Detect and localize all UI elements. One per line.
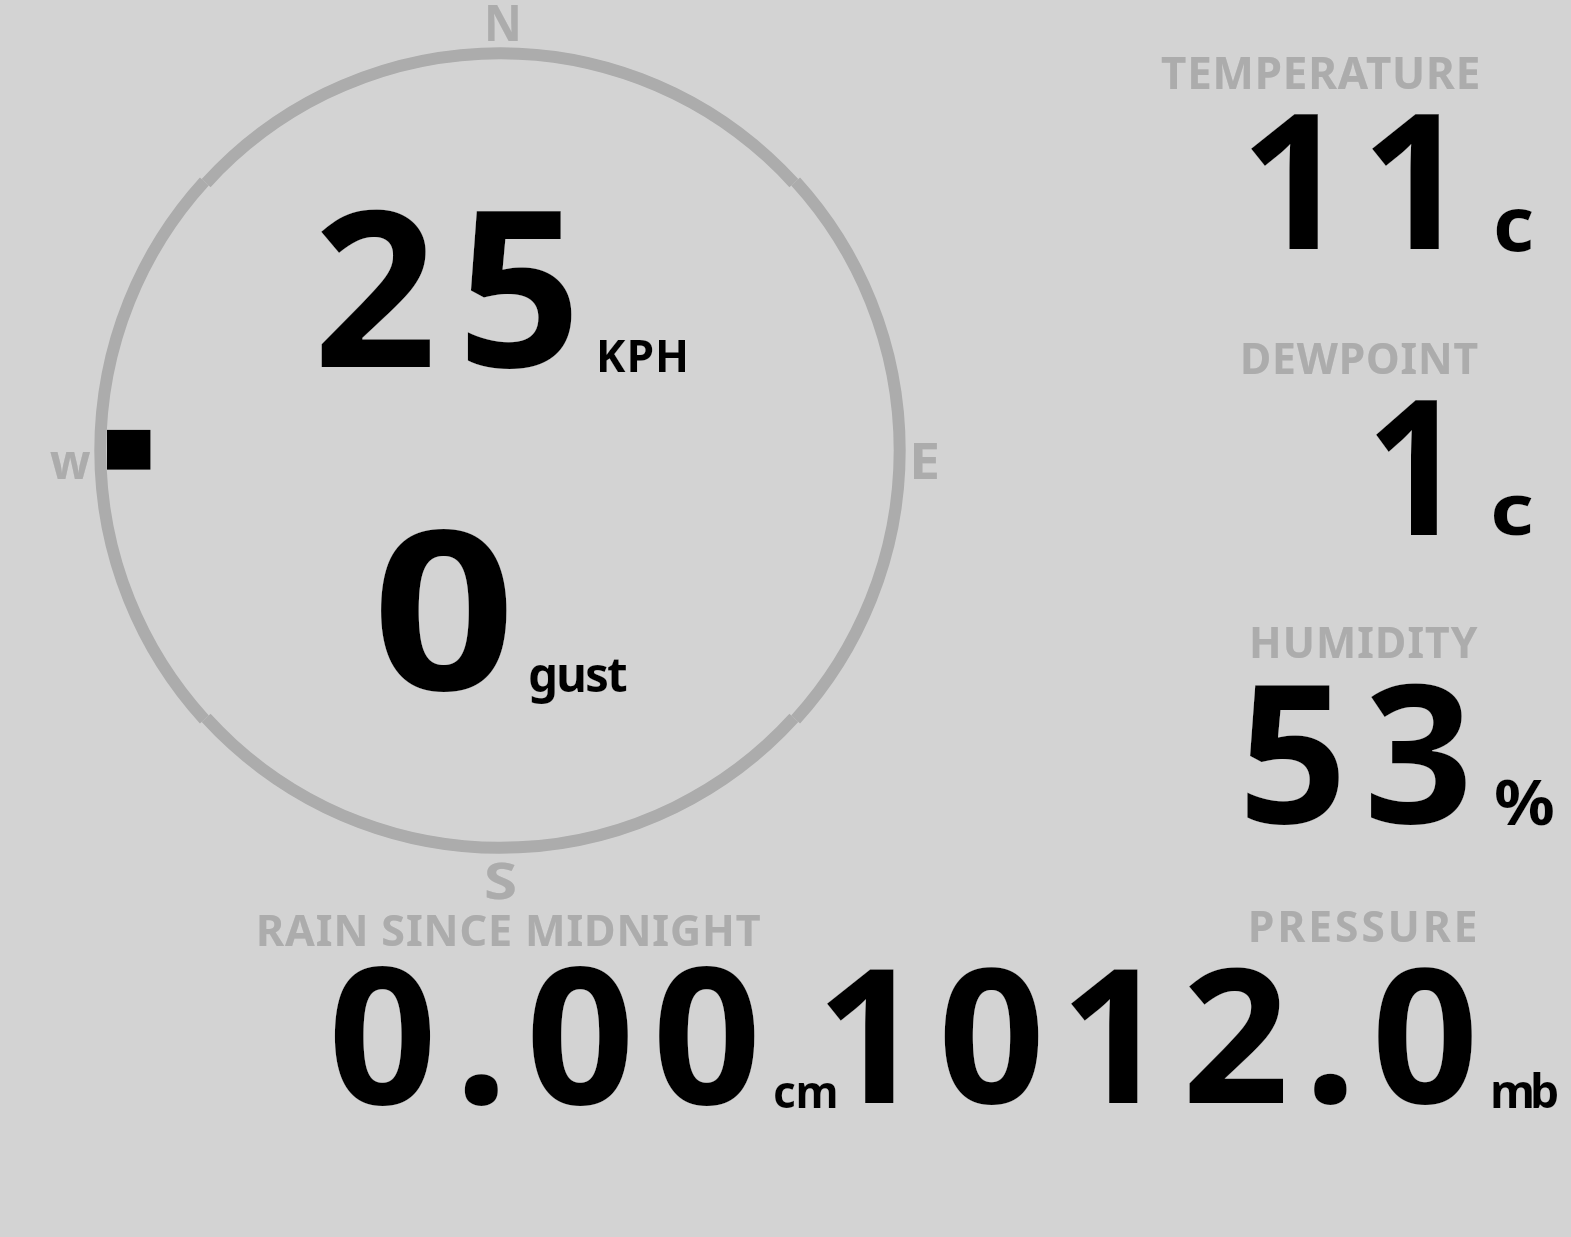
staticText: 11 [1240,48,1483,305]
staticText: 1012.0 [816,903,1494,1158]
button[interactable]: Dewpoint 1 degree Celsius [1140,325,1570,590]
staticText: PRESSURE [1248,897,1481,955]
staticText: 53 [1238,618,1490,879]
button[interactable]: Humidity 53 percent [1140,610,1570,880]
staticText: N [484,0,522,55]
staticText: TEMPERATURE [1161,42,1482,102]
staticText: 0.00 [328,900,779,1160]
staticText: RAIN SINCE MIDNIGHT [256,900,762,959]
staticText: 1 [1366,333,1465,591]
staticText: mb [1490,1059,1555,1122]
staticText: w [50,427,91,494]
staticText: % [1494,759,1556,844]
staticText: KPH [596,324,690,385]
staticText: c [1493,170,1535,273]
staticText: DEWPOINT [1240,328,1479,386]
button[interactable]: Pressure 1012.0 millibars [820,895,1570,1125]
button[interactable]: Wind 25 KPH gusting 0, direction west [90,40,910,910]
staticText: gust [528,641,626,706]
staticText: E [909,426,940,494]
button[interactable]: Temperature 11 degrees Celsius [1140,40,1570,310]
staticText: 0 [372,455,516,755]
staticText: HUMIDITY [1249,612,1479,670]
staticText: c [1490,459,1534,556]
staticText: 25 [313,135,602,430]
staticText: cm [773,1061,839,1121]
staticText: S [484,845,517,914]
button[interactable]: Rain since midnight 0.00 cm [250,895,810,1125]
